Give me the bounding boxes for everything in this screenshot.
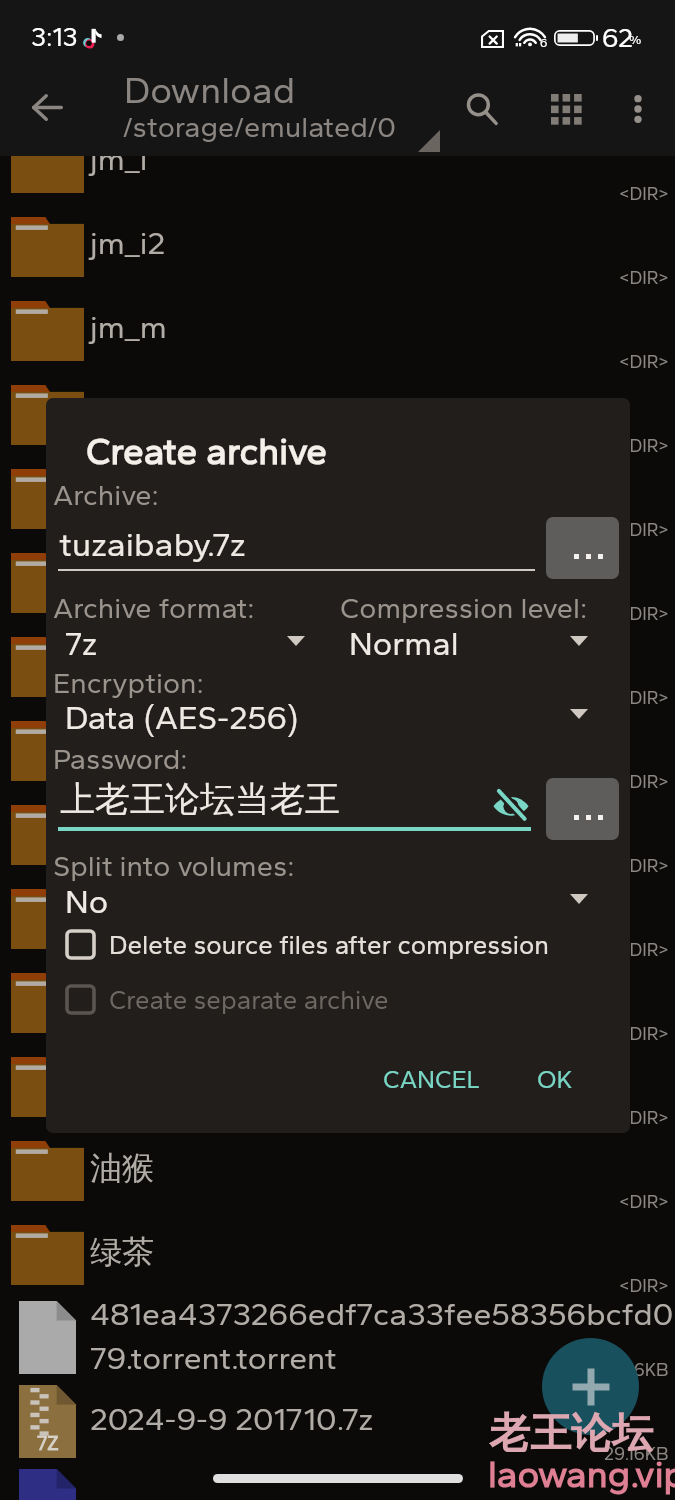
staticText: 2024-9-9 201710.7z [90,1400,374,1438]
staticText: Encryption: [53,665,204,700]
button[interactable]: 481ea4373266edf7ca33fee58356bcfd0 [0,1293,675,1377]
staticText: laowang.vip [488,1452,675,1496]
staticText: % [629,32,642,48]
staticText: <DIR> [619,267,669,289]
staticText: /storage/emulated/0 [123,109,396,144]
staticText: 上老王论坛当老王 [60,777,340,821]
staticText: 481ea4373266edf7ca33fee58356bcfd0 [90,1295,674,1333]
button[interactable]: Back [18,78,76,136]
button[interactable] [0,1461,675,1500]
button[interactable]: <DIR> [0,957,675,1041]
staticText: Normal [349,624,459,664]
button[interactable]: 油猴 [0,1125,675,1209]
staticText: <DIR> [619,435,669,457]
button[interactable]: Browse [546,778,619,840]
staticText: <DIR> [619,519,669,541]
button[interactable]: <DIR> [0,453,675,537]
staticText: 29.16KB [604,1443,669,1465]
staticText: <DIR> [619,771,669,793]
staticText: 绿茶 [90,1232,154,1272]
button[interactable]: CANCEL [367,1053,496,1105]
staticText: Create archive [86,429,327,473]
staticText: <DIR> [619,1275,669,1297]
button[interactable]: 绿茶 [0,1209,675,1293]
button[interactable]: <DIR> [0,789,675,873]
staticText: <DIR> [619,855,669,877]
staticText: <DIR> [619,1107,669,1129]
staticText: 29.16KB [604,1359,669,1381]
staticText: Split into volumes: [53,848,295,883]
staticText: jm_m [90,308,167,346]
staticText: No [65,882,109,922]
staticText: 7Z [37,1431,59,1455]
button[interactable]: OK [521,1053,589,1105]
staticText: jm_i [90,140,148,178]
button[interactable]: Browse [546,517,619,579]
staticText: Archive format: [53,590,255,625]
button[interactable]: 7Z [0,1377,675,1461]
button[interactable]: Show password [492,789,530,820]
staticText: jm_i2 [90,224,166,262]
staticText: <DIR> [619,603,669,625]
staticText: <DIR> [619,687,669,709]
staticText: 62 [602,21,633,53]
button[interactable]: <DIR> [0,873,675,957]
button[interactable]: jm_i [0,117,675,201]
staticText: Password: [53,741,188,776]
staticText: <DIR> [619,939,669,961]
staticText: <DIR> [619,351,669,373]
staticText: 油猴 [90,1148,154,1188]
button[interactable]: jm_i2 [0,201,675,285]
button[interactable]: Search [451,78,512,139]
button[interactable]: More options [607,78,668,139]
staticText: Delete source files after compression [109,929,550,960]
staticText: 6 [540,36,548,50]
button[interactable]: Delete source files after compression [58,922,630,967]
button[interactable]: <DIR> [0,621,675,705]
staticText: Create separate archive [109,984,389,1015]
staticText: Archive: [53,477,159,512]
staticText: <DIR> [619,1023,669,1045]
staticText: <DIR> [619,183,669,205]
staticText: Data (AES-256) [65,698,299,738]
staticText: Download [124,68,296,112]
staticText: Compression level: [340,590,588,625]
button[interactable]: <DIR> [0,369,675,453]
button[interactable]: jm_m [0,285,675,369]
button[interactable]: <DIR> [0,1041,675,1125]
staticText: 7z [65,624,98,664]
staticText: <DIR> [619,1191,669,1213]
staticText: CANCEL [383,1064,480,1094]
button[interactable]: Change view [535,78,596,139]
button[interactable]: <DIR> [0,537,675,621]
button[interactable]: Create separate archive [58,977,630,1022]
staticText: 老王论坛 [489,1408,653,1460]
staticText: 3:13 [31,21,78,52]
button[interactable]: Add [542,1338,639,1435]
staticText: tuzaibaby.7z [59,524,246,565]
button[interactable]: <DIR> [0,705,675,789]
staticText: OK [537,1064,573,1094]
staticText: 79.torrent.torrent [90,1339,337,1377]
